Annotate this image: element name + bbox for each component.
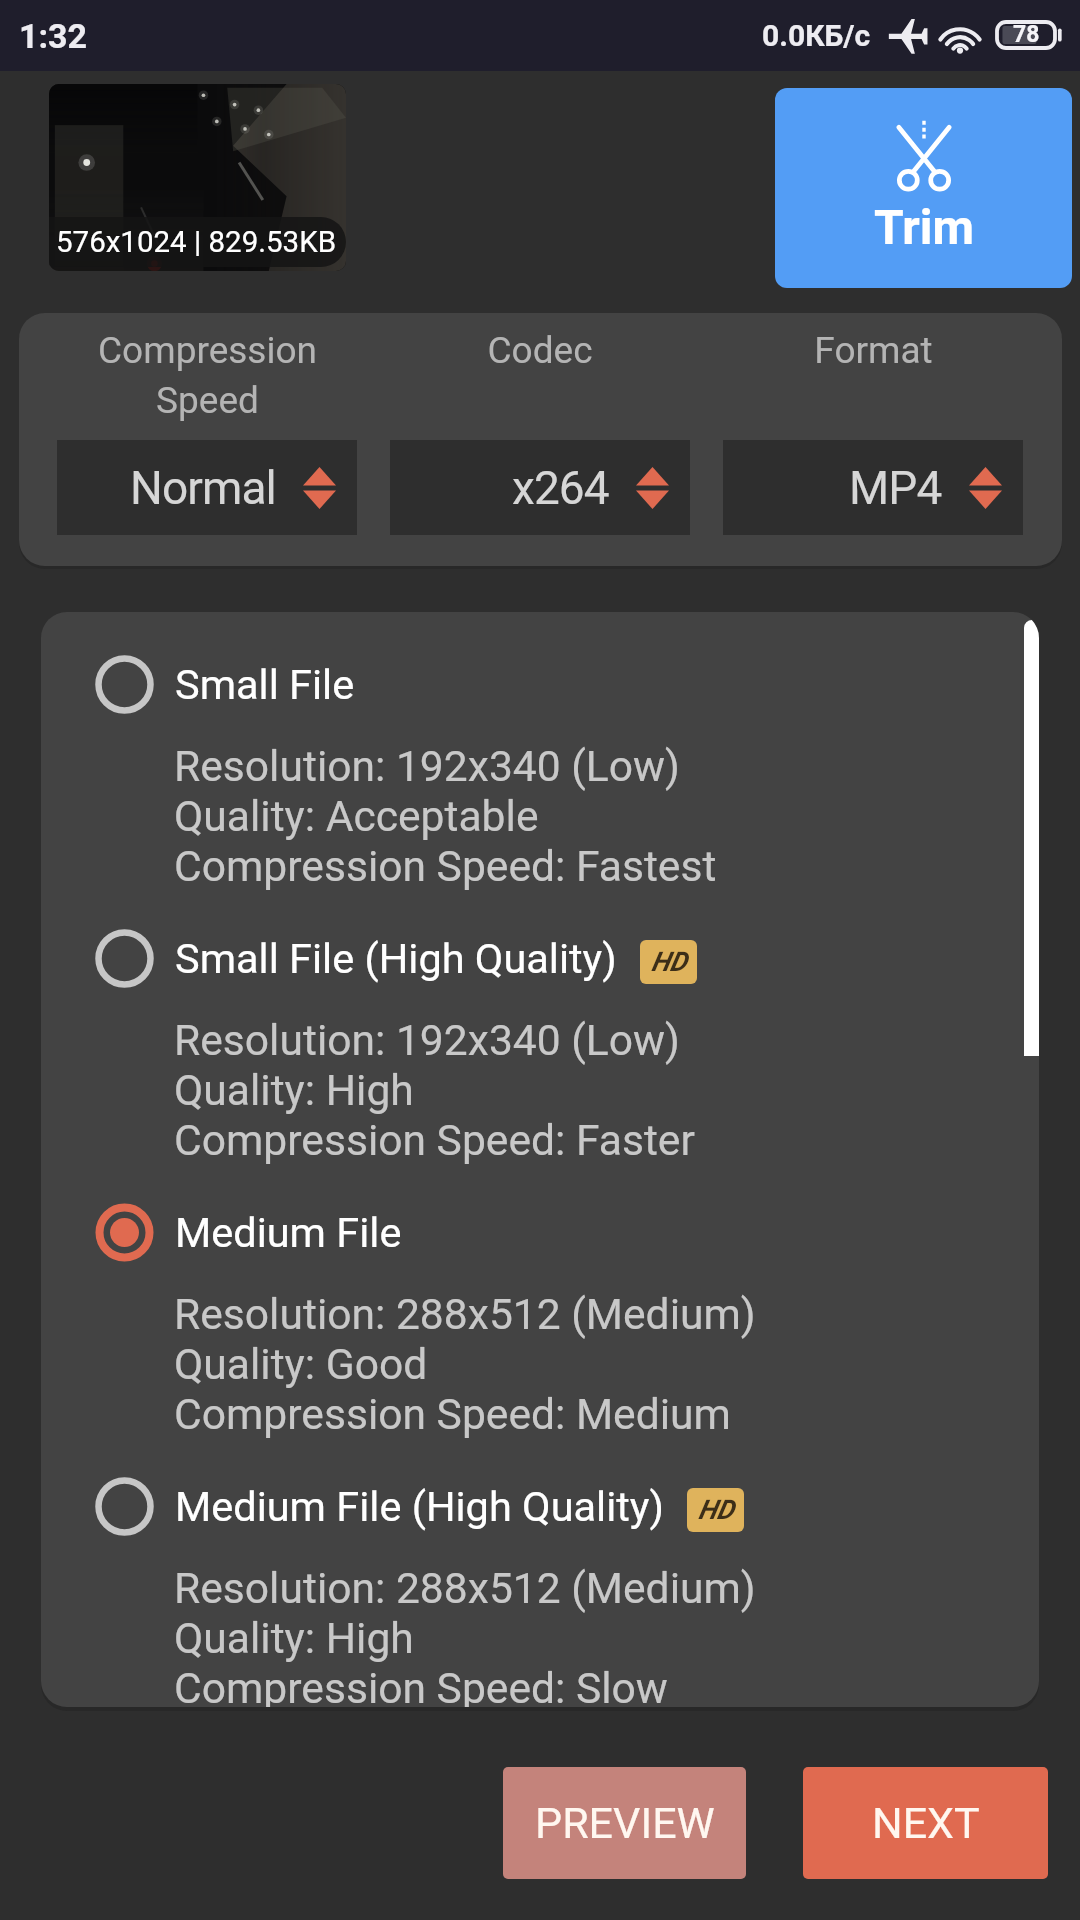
staticText: Compression Speed: Slow bbox=[174, 1663, 668, 1707]
staticText: Compression Speed: Fastest bbox=[174, 841, 717, 891]
staticText: Small File bbox=[175, 660, 355, 709]
button[interactable]: Normal bbox=[57, 440, 357, 535]
staticText: Quality: Acceptable bbox=[174, 791, 539, 841]
staticText: Medium File (High Quality) bbox=[175, 1482, 664, 1531]
button[interactable]: MP4 bbox=[723, 440, 1023, 535]
staticText: Compression Speed: Medium bbox=[174, 1389, 731, 1439]
button[interactable]: Medium File (High Quality) bbox=[41, 1477, 1039, 1707]
staticText: Compression Speed bbox=[98, 329, 317, 422]
staticText: Medium File bbox=[175, 1208, 402, 1257]
staticText: Resolution: 288x512 (Medium) bbox=[174, 1563, 756, 1613]
button[interactable]: Medium File bbox=[41, 1203, 1039, 1461]
button[interactable]: Trim bbox=[775, 88, 1072, 288]
staticText: Codec bbox=[487, 329, 593, 372]
staticText: NEXT bbox=[872, 1798, 980, 1848]
staticText: Trim bbox=[874, 199, 974, 255]
staticText: Quality: High bbox=[174, 1065, 414, 1115]
staticText: Compression Speed: Faster bbox=[174, 1115, 695, 1165]
staticText: HD bbox=[698, 1494, 734, 1526]
staticText: 576x1024 | 829.53KB bbox=[56, 225, 337, 260]
staticText: Resolution: 192x340 (Low) bbox=[174, 741, 680, 791]
staticText: 1:32 bbox=[19, 16, 88, 56]
staticText: Resolution: 288x512 (Medium) bbox=[174, 1289, 756, 1339]
button[interactable]: Video thumbnail bbox=[49, 84, 346, 271]
staticText: Small File (High Quality) bbox=[175, 934, 617, 983]
button[interactable]: Small File bbox=[41, 655, 1039, 913]
button[interactable]: NEXT bbox=[803, 1767, 1048, 1879]
staticText: PREVIEW bbox=[535, 1798, 715, 1848]
staticText: HD bbox=[651, 946, 687, 978]
staticText: Quality: Good bbox=[174, 1339, 428, 1389]
staticText: Quality: High bbox=[174, 1613, 414, 1663]
staticText: 78 bbox=[1013, 21, 1040, 48]
staticText: Normal bbox=[130, 461, 276, 515]
staticText: Resolution: 192x340 (Low) bbox=[174, 1015, 680, 1065]
staticText: x264 bbox=[512, 461, 609, 515]
button[interactable]: PREVIEW bbox=[503, 1767, 746, 1879]
staticText: Format bbox=[814, 329, 933, 372]
button[interactable]: Small File (High Quality) bbox=[41, 929, 1039, 1187]
button[interactable]: x264 bbox=[390, 440, 690, 535]
staticText: MP4 bbox=[849, 461, 942, 515]
staticText: 0.0КБ/c bbox=[762, 18, 871, 53]
